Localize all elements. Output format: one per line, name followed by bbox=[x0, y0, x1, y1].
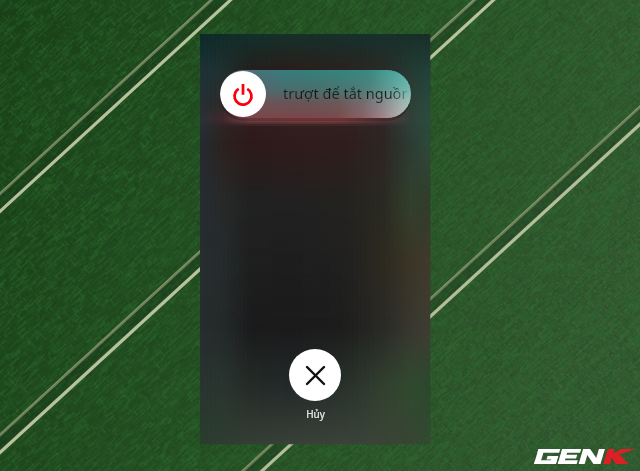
button[interactable]: Hủy bbox=[289, 349, 341, 401]
staticText: Hủy bbox=[306, 407, 325, 421]
button[interactable]: trượt để tắt nguồn bbox=[220, 70, 411, 118]
other: Slide to power off bbox=[220, 71, 266, 117]
staticText: trượt để tắt nguồn bbox=[283, 83, 407, 103]
